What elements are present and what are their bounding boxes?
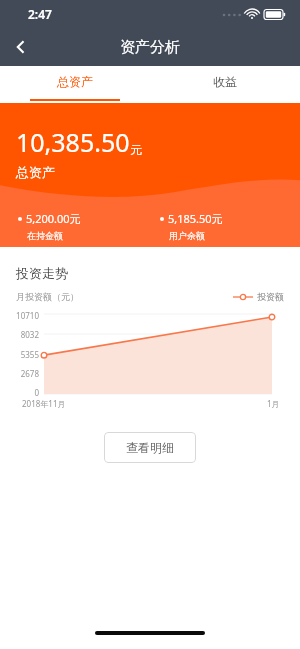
button[interactable]: 收益 xyxy=(150,66,300,103)
staticText: 总资产 xyxy=(16,164,55,180)
staticText: 10,385.50 xyxy=(16,125,130,159)
staticText: 2:47 xyxy=(28,6,52,22)
staticText: 元 xyxy=(130,142,142,157)
staticText: 用户余额 xyxy=(169,230,205,241)
staticText: 投资走势 xyxy=(16,265,68,281)
staticText: 0 xyxy=(34,387,39,398)
staticText: 2678 xyxy=(20,368,39,379)
button[interactable]: 查看明细 xyxy=(104,432,196,463)
staticText: 5,185.50元 xyxy=(168,211,223,226)
staticText: 8032 xyxy=(20,329,39,340)
staticText: 1月 xyxy=(267,398,280,409)
staticText: 收益 xyxy=(213,74,237,89)
staticText: 5355 xyxy=(20,349,39,360)
button[interactable]: Back xyxy=(0,28,42,66)
staticText: 10710 xyxy=(16,310,39,321)
staticText: 资产分析 xyxy=(120,38,180,57)
staticText: 月投资额（元） xyxy=(16,291,79,302)
staticText: 2018年11月 xyxy=(22,398,66,409)
staticText: 查看明细 xyxy=(126,440,174,455)
button[interactable]: 总资产 xyxy=(0,66,150,103)
staticText: 总资产 xyxy=(57,74,93,89)
staticText: 投资额 xyxy=(257,291,284,302)
staticText: 5,200.00元 xyxy=(26,211,81,226)
staticText: 在持金额 xyxy=(27,230,63,241)
